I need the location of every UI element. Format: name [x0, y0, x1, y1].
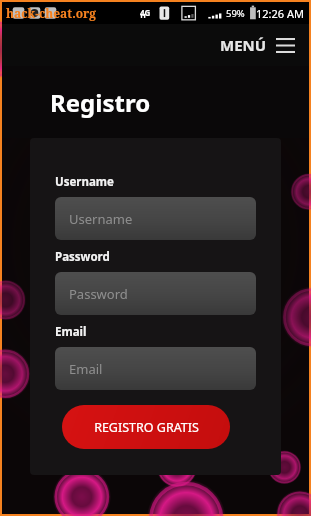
button[interactable]: Email	[55, 347, 256, 390]
staticText: Password	[69, 285, 128, 303]
button[interactable]: Menú	[216, 31, 299, 59]
button[interactable]: Username	[55, 197, 256, 240]
staticText: Username	[55, 174, 114, 190]
staticText: REGISTRO GRATIS	[94, 419, 199, 436]
staticText: Email	[55, 324, 87, 340]
staticText: MENÚ	[220, 35, 267, 55]
staticText: Email	[69, 360, 103, 378]
staticText: 59%	[226, 7, 245, 20]
staticText: hack-cheat.org	[6, 5, 97, 21]
staticText: 12:26 AM	[256, 6, 304, 21]
staticText: Registro	[50, 86, 151, 119]
button[interactable]: REGISTRO GRATIS	[62, 405, 230, 449]
staticText: Password	[55, 249, 110, 265]
button[interactable]: Password	[55, 272, 256, 315]
staticText: Username	[69, 210, 133, 228]
staticText: 4G	[140, 7, 151, 18]
